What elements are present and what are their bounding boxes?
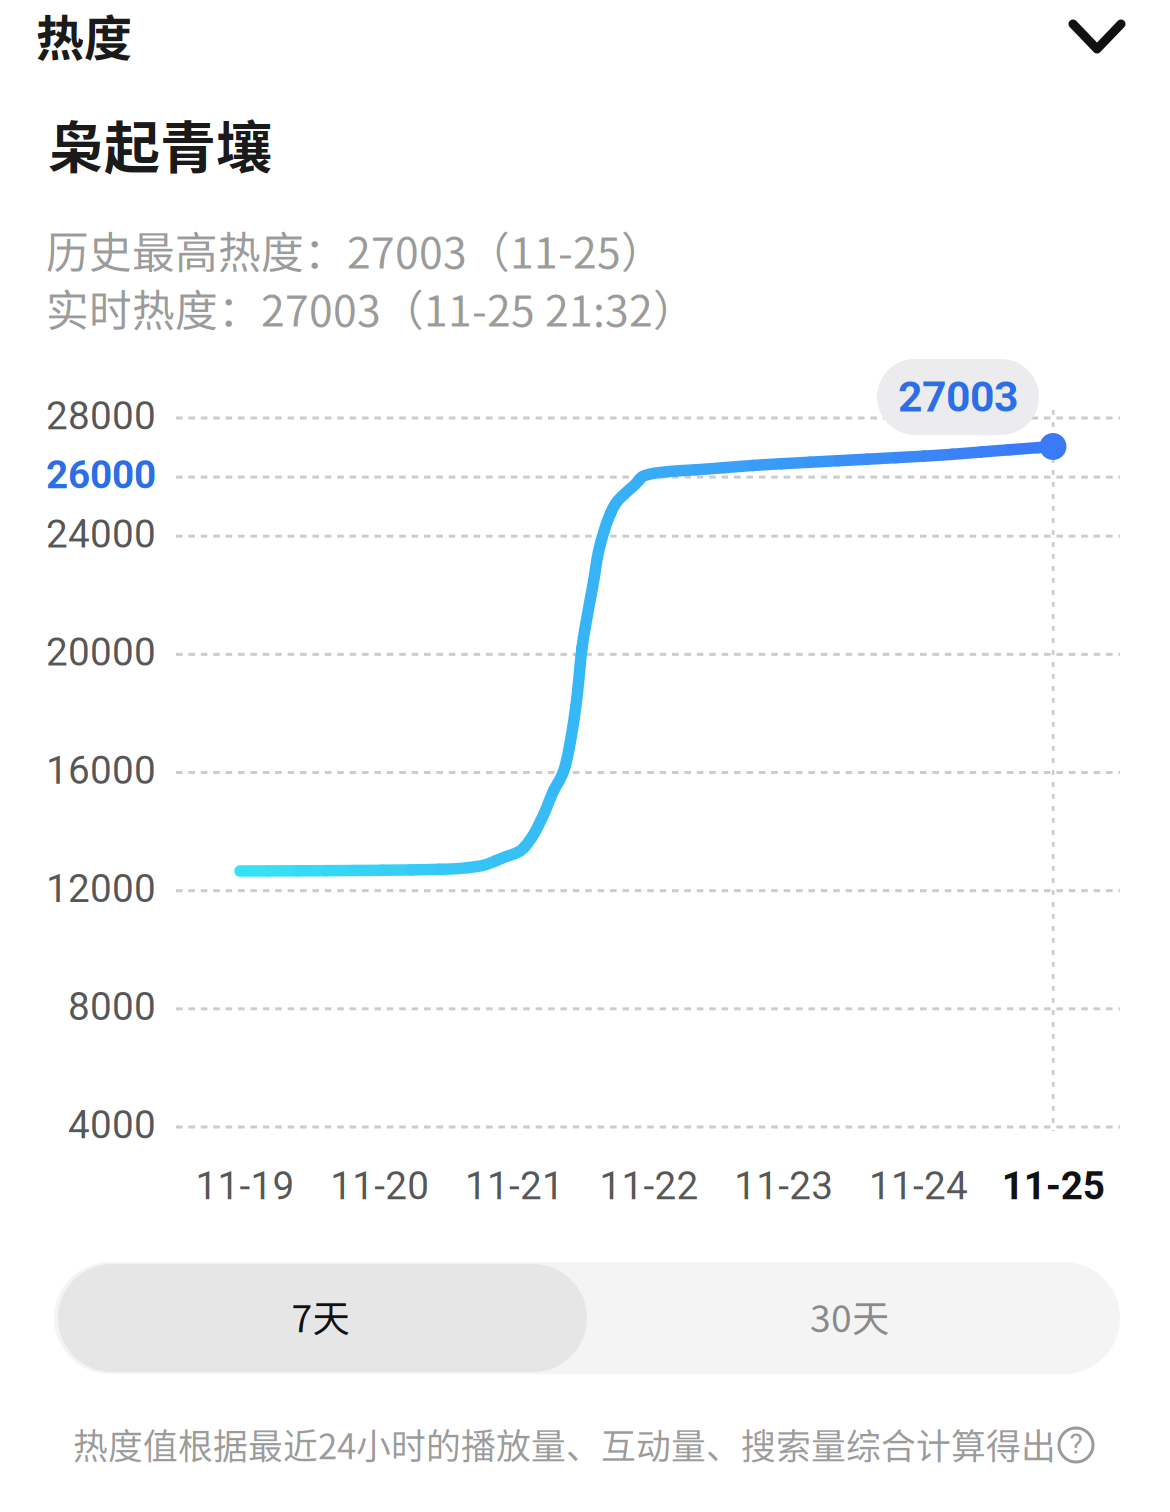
staticText: 16000 [46, 748, 156, 793]
staticText: 12000 [46, 866, 156, 911]
staticText: 热度值根据最近24小时的播放量、互动量、搜索量综合计算得出 [73, 1419, 1056, 1469]
staticText: 11-22 [600, 1163, 699, 1209]
staticText: 11-19 [195, 1163, 294, 1209]
staticText: 4000 [68, 1102, 156, 1148]
button[interactable]: 7天 [58, 1264, 587, 1372]
staticText: 26000 [46, 452, 156, 498]
staticText: 历史最高热度：27003（11-25） [46, 219, 664, 281]
staticText: 实时热度：27003（11-25 21:32） [46, 277, 696, 339]
staticText: 20000 [46, 630, 156, 675]
staticText: 11-21 [465, 1163, 564, 1209]
staticText: 11-25 [1002, 1163, 1105, 1209]
staticText: 24000 [46, 511, 156, 557]
staticText: 28000 [46, 393, 156, 439]
button[interactable]: 30天 [587, 1264, 1116, 1372]
button[interactable]: Collapse [0, 0, 1170, 1512]
staticText: 30天 [810, 1289, 889, 1343]
staticText: 7天 [291, 1289, 349, 1343]
staticText: 热度 [36, 0, 132, 69]
staticText: ? [1069, 1428, 1082, 1460]
staticText: 11-20 [330, 1163, 429, 1209]
staticText: 枭起青壤 [48, 103, 272, 184]
staticText: 8000 [68, 984, 156, 1029]
button[interactable]: About heat value [1054, 1423, 1098, 1467]
staticText: 11-23 [734, 1163, 833, 1209]
staticText: 11-24 [869, 1163, 968, 1209]
staticText: 27003 [898, 372, 1018, 422]
